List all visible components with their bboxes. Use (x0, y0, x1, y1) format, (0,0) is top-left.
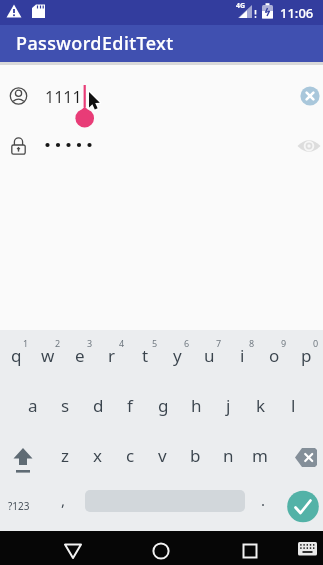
button[interactable]: . (247, 474, 279, 525)
button[interactable]: f (114, 380, 146, 430)
button[interactable]: , (47, 474, 79, 525)
staticText: b (190, 444, 201, 467)
staticText: 6 (184, 337, 190, 349)
button[interactable]: v (146, 430, 178, 480)
staticText: . (261, 490, 266, 510)
button[interactable]: b (179, 430, 211, 480)
button[interactable]: u (193, 330, 225, 380)
staticText: f (127, 394, 133, 417)
staticText: x (93, 444, 102, 467)
button[interactable] (143, 537, 179, 565)
button[interactable]: z (49, 430, 81, 480)
staticText: p (301, 344, 312, 367)
staticText: c (126, 444, 135, 467)
button[interactable]: e (64, 330, 96, 380)
button[interactable] (296, 134, 322, 158)
button[interactable]: h (180, 380, 212, 430)
button[interactable]: i (226, 330, 258, 380)
staticText: 4G (236, 1, 246, 11)
staticText: w (41, 344, 55, 367)
button[interactable]: n (212, 430, 244, 480)
staticText: g (158, 394, 169, 417)
staticText: 2 (55, 337, 61, 349)
staticText: h (191, 394, 202, 417)
button[interactable] (300, 86, 320, 106)
staticText: y (173, 344, 182, 367)
button[interactable]: l (277, 380, 309, 430)
button[interactable] (286, 490, 320, 524)
button[interactable] (296, 539, 320, 559)
staticText: 7 (216, 337, 222, 349)
button[interactable] (4, 430, 42, 480)
staticText: 5 (152, 337, 158, 349)
staticText: j (226, 394, 231, 417)
button[interactable]: w (32, 330, 64, 380)
button[interactable]: k (245, 380, 277, 430)
button[interactable]: j (212, 380, 244, 430)
button[interactable]: ?123 (2, 480, 36, 531)
button[interactable]: s (49, 380, 81, 430)
button[interactable] (288, 430, 323, 480)
staticText: q (11, 344, 22, 367)
staticText: e (75, 344, 85, 367)
staticText: ?123 (8, 499, 30, 513)
staticText: 3 (87, 337, 93, 349)
button[interactable]: y (161, 330, 193, 380)
staticText: n (223, 444, 234, 467)
staticText: 8 (249, 337, 255, 349)
staticText: m (252, 444, 268, 467)
staticText: d (93, 394, 104, 417)
staticText: 11:06 (280, 4, 314, 22)
staticText: , (61, 490, 66, 510)
button[interactable]: p (290, 330, 322, 380)
button[interactable]: x (81, 430, 113, 480)
staticText: 1111 (45, 86, 82, 108)
staticText: t (142, 344, 149, 367)
staticText: i (240, 344, 245, 367)
staticText: v (158, 444, 167, 467)
staticText: o (269, 344, 280, 367)
button[interactable]: g (147, 380, 179, 430)
button[interactable]: o (258, 330, 290, 380)
staticText: 0 (313, 337, 319, 349)
staticText: a (28, 394, 38, 417)
staticText: r (108, 344, 116, 367)
button[interactable]: a (17, 380, 49, 430)
button[interactable]: PasswordEditText (0, 25, 323, 62)
button[interactable]: t (129, 330, 161, 380)
staticText: k (256, 394, 266, 417)
staticText: z (61, 444, 69, 467)
button[interactable]: c (114, 430, 146, 480)
staticText: 9 (281, 337, 287, 349)
staticText: l (291, 394, 296, 417)
staticText: u (204, 344, 215, 367)
button[interactable]: d (82, 380, 114, 430)
button[interactable]: r (96, 330, 128, 380)
staticText: PasswordEditText (16, 31, 174, 56)
button[interactable] (232, 537, 268, 565)
button[interactable]: q (0, 330, 32, 380)
staticText: s (61, 394, 70, 417)
staticText: 4 (119, 337, 125, 349)
button[interactable] (55, 537, 91, 565)
button[interactable]: m (244, 430, 276, 480)
staticText: 1 (23, 337, 29, 349)
